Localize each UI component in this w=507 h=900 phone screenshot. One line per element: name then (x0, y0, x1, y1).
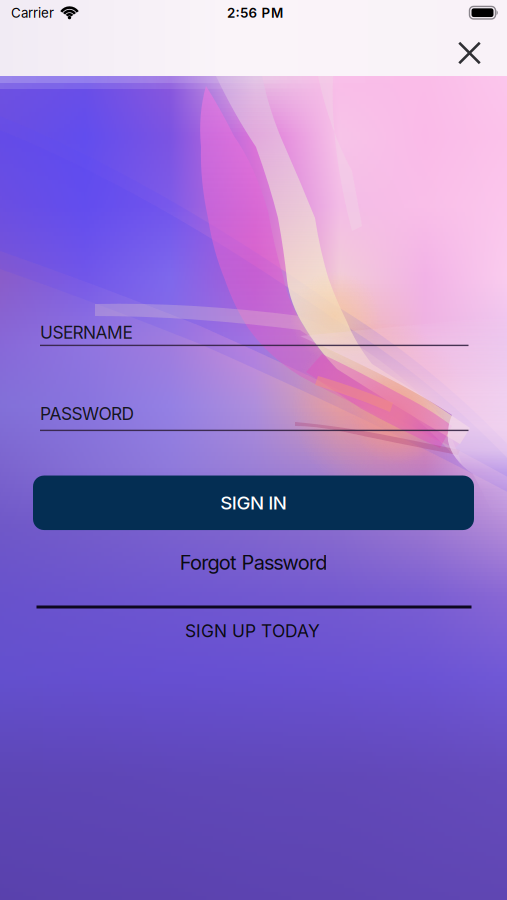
staticText: Carrier (11, 5, 54, 21)
staticText: SIGN UP TODAY (185, 621, 320, 641)
staticText: USERNAME (40, 322, 132, 343)
button[interactable]: Close (448, 32, 491, 74)
button[interactable]: Username (40, 311, 468, 351)
button[interactable]: SIGN IN (33, 476, 474, 530)
staticText: PASSWORD (40, 404, 134, 424)
staticText: Forgot Password (180, 551, 327, 574)
staticText: 2:56 PM (227, 5, 283, 21)
button[interactable]: Forgot Password (180, 551, 327, 574)
button[interactable]: SIGN UP TODAY (185, 621, 320, 641)
staticText: SIGN IN (220, 492, 287, 514)
button[interactable]: Password (40, 396, 468, 436)
